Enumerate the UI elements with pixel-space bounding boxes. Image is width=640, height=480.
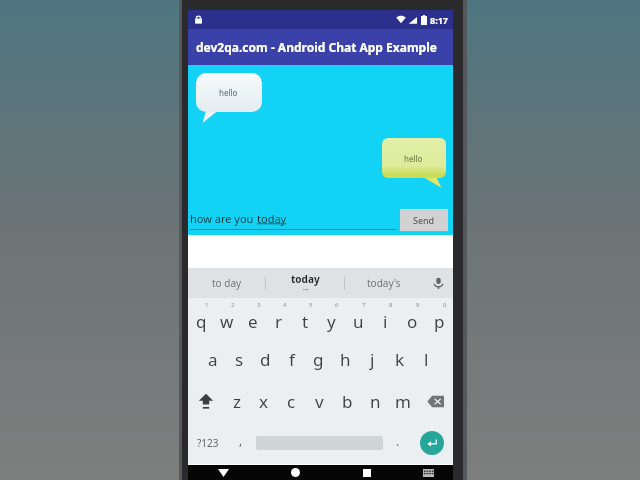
staticText: u bbox=[353, 310, 364, 333]
staticText: n bbox=[370, 390, 381, 413]
staticText: f bbox=[289, 348, 295, 371]
staticText: y bbox=[327, 310, 336, 333]
button[interactable]: h bbox=[332, 338, 359, 380]
staticText: today's bbox=[367, 276, 401, 290]
staticText: 2 bbox=[231, 301, 235, 309]
button[interactable]: x bbox=[250, 380, 277, 422]
button[interactable]: j bbox=[359, 338, 386, 380]
staticText: w bbox=[220, 310, 234, 333]
staticText: , bbox=[239, 432, 243, 448]
button[interactable]: . bbox=[385, 422, 411, 464]
button[interactable]: f bbox=[278, 338, 305, 380]
button[interactable]: 6 bbox=[318, 298, 345, 338]
button[interactable]: z bbox=[223, 380, 250, 422]
staticText: s bbox=[235, 348, 244, 371]
button[interactable]: d bbox=[252, 338, 278, 380]
button[interactable]: ?123 bbox=[188, 422, 228, 464]
button[interactable]: , bbox=[228, 422, 254, 464]
staticText: x bbox=[259, 390, 268, 413]
button[interactable]: s bbox=[226, 338, 252, 380]
staticText: to day bbox=[212, 276, 242, 290]
button[interactable]: Switch keyboard bbox=[403, 465, 453, 480]
button[interactable]: n bbox=[361, 380, 389, 422]
button[interactable]: 7 bbox=[345, 298, 372, 338]
button[interactable]: Home bbox=[259, 465, 331, 480]
staticText: 7 bbox=[362, 301, 366, 309]
staticText: today bbox=[291, 272, 320, 286]
button[interactable]: 5 bbox=[292, 298, 318, 338]
button[interactable]: g bbox=[305, 338, 332, 380]
button[interactable]: a bbox=[200, 338, 226, 380]
button[interactable]: Shift bbox=[188, 380, 223, 422]
staticText: l bbox=[424, 348, 429, 371]
staticText: today bbox=[257, 211, 287, 226]
staticText: e bbox=[248, 310, 258, 333]
button[interactable]: k bbox=[386, 338, 413, 380]
button[interactable]: 9 bbox=[399, 298, 426, 338]
button[interactable]: b bbox=[333, 380, 361, 422]
button[interactable]: Send bbox=[400, 209, 448, 231]
staticText: q bbox=[196, 310, 207, 333]
staticText: o bbox=[407, 310, 418, 333]
staticText: dev2qa.com - Android Chat App Example bbox=[196, 39, 437, 55]
button[interactable]: 4 bbox=[266, 298, 292, 338]
button[interactable]: to day bbox=[188, 268, 265, 298]
button[interactable]: v bbox=[305, 380, 333, 422]
staticText: v bbox=[315, 390, 324, 413]
staticText: m bbox=[395, 390, 411, 413]
staticText: 8:17 bbox=[430, 14, 448, 26]
button[interactable]: 0 bbox=[426, 298, 453, 338]
staticText: c bbox=[287, 390, 296, 413]
staticText: hello bbox=[404, 153, 423, 164]
button[interactable]: 2 bbox=[214, 298, 240, 338]
staticText: 8 bbox=[389, 301, 393, 309]
button[interactable]: Recents bbox=[331, 465, 403, 480]
staticText: b bbox=[342, 390, 353, 413]
staticText: 3 bbox=[257, 301, 261, 309]
button[interactable]: Backspace bbox=[417, 380, 453, 422]
button[interactable]: 8 bbox=[372, 298, 399, 338]
button[interactable]: l bbox=[413, 338, 440, 380]
staticText: hello bbox=[219, 87, 238, 98]
staticText: t bbox=[302, 310, 309, 333]
staticText: 1 bbox=[205, 301, 209, 309]
button[interactable]: Back bbox=[188, 465, 259, 480]
staticText: ••• bbox=[303, 287, 309, 294]
button[interactable]: m bbox=[389, 380, 417, 422]
staticText: 5 bbox=[309, 301, 313, 309]
staticText: z bbox=[233, 390, 241, 413]
staticText: i bbox=[383, 310, 388, 333]
staticText: d bbox=[260, 348, 271, 371]
staticText: how are you bbox=[190, 211, 257, 226]
button[interactable]: how are you bbox=[190, 211, 396, 230]
staticText: 0 bbox=[443, 301, 447, 309]
button[interactable]: Voice input bbox=[423, 268, 453, 298]
staticText: j bbox=[370, 348, 375, 371]
button[interactable]: c bbox=[277, 380, 305, 422]
staticText: p bbox=[434, 310, 445, 333]
staticText: Send bbox=[413, 214, 435, 226]
staticText: k bbox=[395, 348, 405, 371]
staticText: a bbox=[208, 348, 218, 371]
staticText: . bbox=[396, 433, 400, 449]
button[interactable]: Enter bbox=[420, 431, 444, 455]
staticText: r bbox=[275, 310, 283, 333]
staticText: h bbox=[340, 348, 351, 371]
button[interactable]: 3 bbox=[240, 298, 266, 338]
staticText: 4 bbox=[283, 301, 287, 309]
staticText: g bbox=[313, 348, 324, 371]
button[interactable]: today's bbox=[345, 268, 423, 298]
button[interactable]: today bbox=[266, 268, 344, 298]
button[interactable]: 1 bbox=[188, 298, 214, 338]
staticText: 6 bbox=[335, 301, 339, 309]
staticText: ?123 bbox=[197, 436, 219, 450]
staticText: 9 bbox=[416, 301, 420, 309]
